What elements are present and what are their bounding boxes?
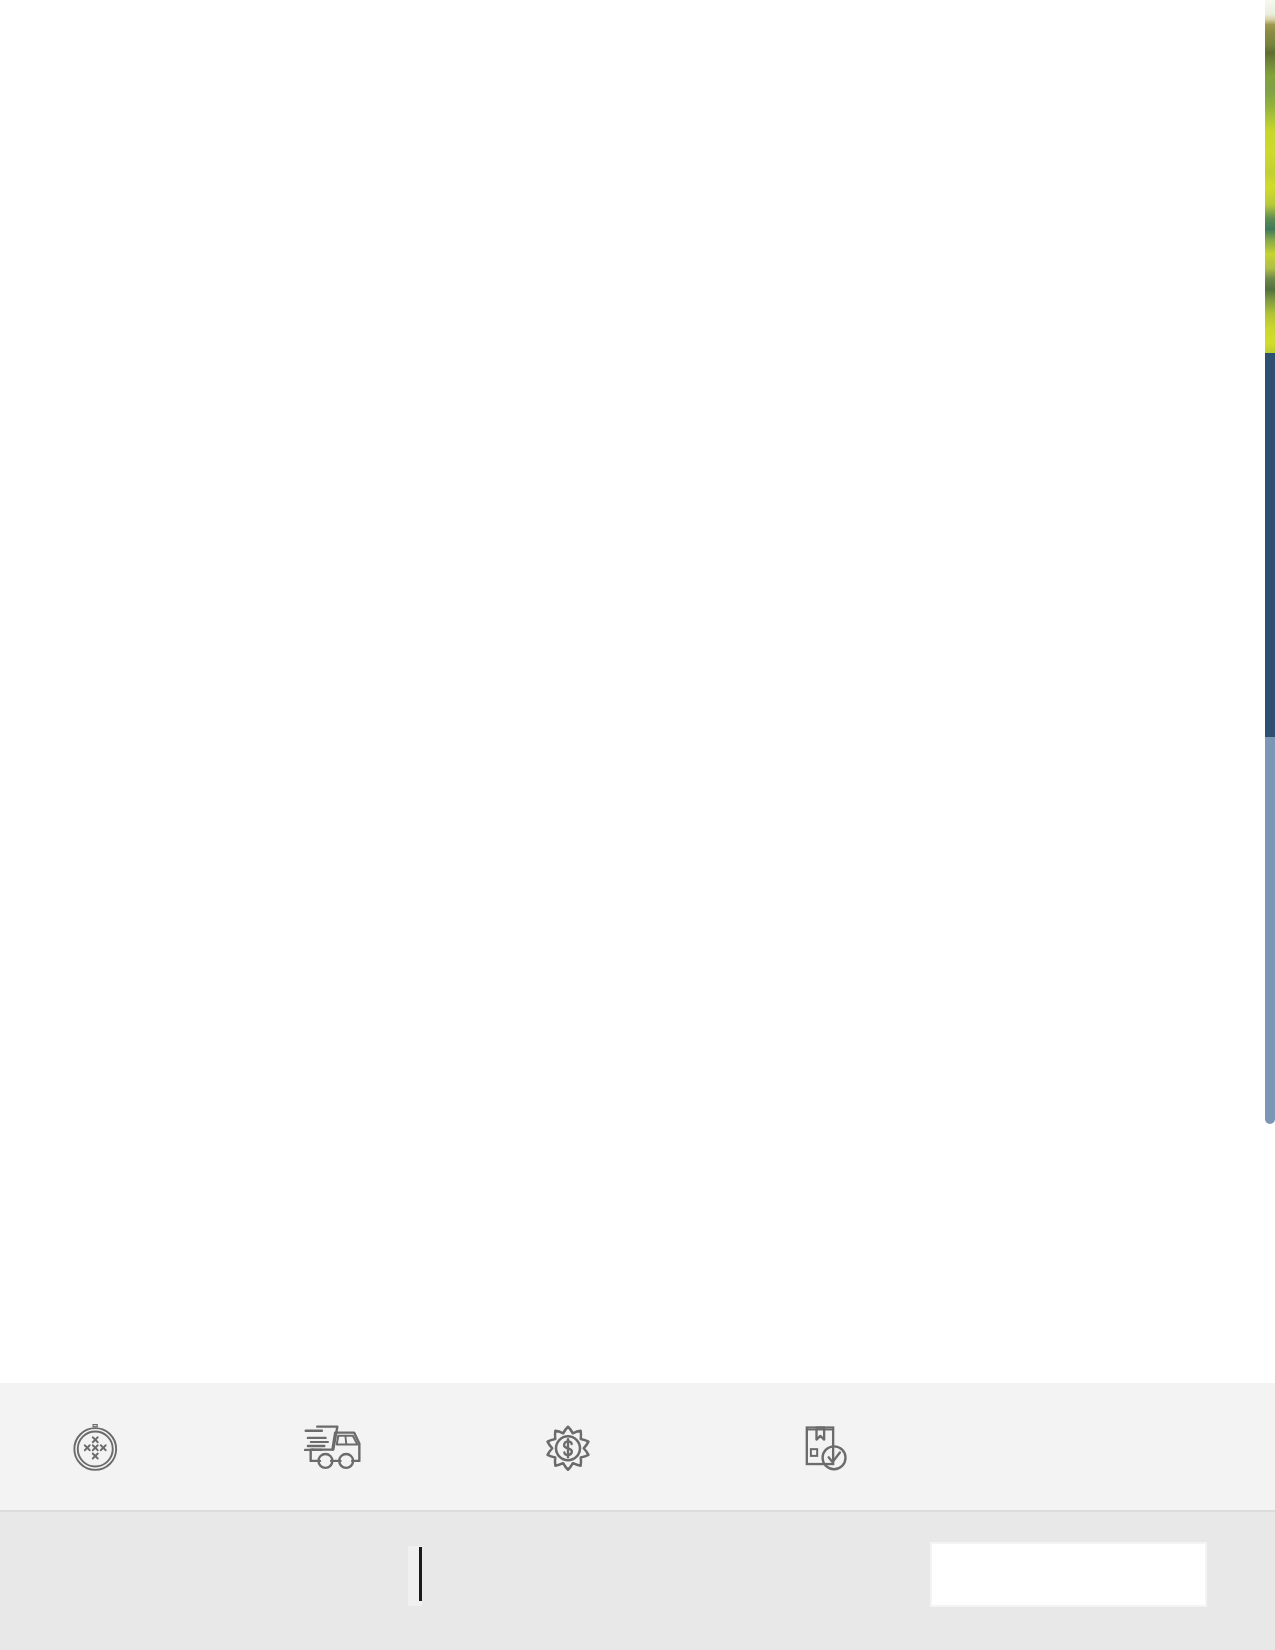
button[interactable]: Best price (543, 1422, 593, 1472)
button[interactable]: Fast delivery (302, 1423, 364, 1471)
button[interactable]: Quality guaranteed (803, 1423, 848, 1471)
button[interactable]: Handmade embroidery (70, 1421, 120, 1471)
